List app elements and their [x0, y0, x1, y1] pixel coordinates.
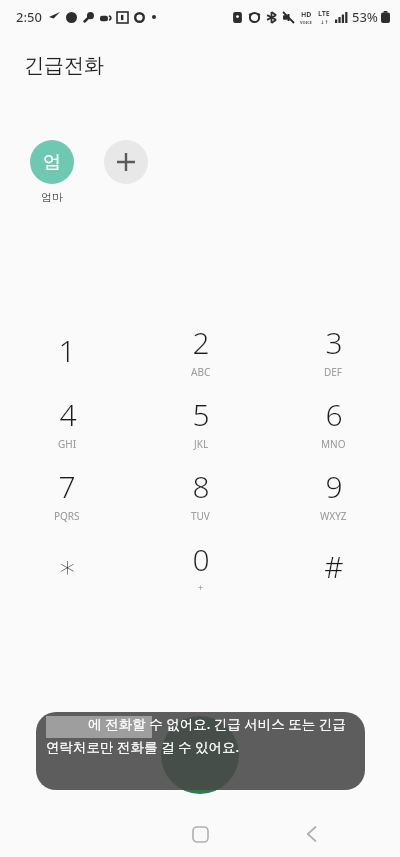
staticText: ABC: [191, 365, 211, 379]
button[interactable]: 0: [134, 530, 267, 602]
staticText: 3: [325, 322, 343, 363]
staticText: WXYZ: [320, 509, 347, 523]
staticText: MNO: [321, 437, 346, 451]
button[interactable]: 1: [0, 314, 134, 386]
staticText: 1: [58, 330, 76, 371]
button[interactable]: 2: [134, 314, 267, 386]
staticText: 2:50: [16, 8, 42, 26]
button[interactable]: Add contact: [104, 140, 148, 184]
staticText: 0: [192, 539, 210, 580]
staticText: 에 전화할 수 없어요. 긴급 서비스 또는 긴급 연락처로만 전화를 걸 수 …: [46, 715, 353, 756]
button[interactable]: 7: [0, 458, 134, 530]
button[interactable]: 엄: [30, 140, 74, 204]
button[interactable]: #: [267, 530, 400, 602]
staticText: 8: [192, 466, 210, 507]
staticText: 7: [58, 466, 76, 507]
staticText: +: [198, 581, 204, 593]
staticText: 53%: [352, 8, 378, 26]
staticText: 5: [192, 394, 210, 435]
button[interactable]: 6: [267, 386, 400, 458]
staticText: 2: [192, 322, 210, 363]
staticText: ∗: [58, 549, 77, 584]
staticText: 긴급전화: [24, 53, 104, 78]
button[interactable]: ∗: [0, 530, 134, 602]
staticText: TUV: [191, 509, 210, 523]
button[interactable]: 4: [0, 386, 134, 458]
staticText: DEF: [324, 365, 343, 379]
staticText: 엄마: [41, 190, 63, 204]
button[interactable]: 3: [267, 314, 400, 386]
button[interactable]: Call: [161, 716, 239, 794]
staticText: ↓↑: [320, 19, 329, 25]
staticText: VOICE: [300, 20, 313, 25]
button[interactable]: Home: [177, 811, 223, 857]
button[interactable]: Back: [289, 811, 335, 857]
staticText: 6: [325, 394, 343, 435]
button[interactable]: 9: [267, 458, 400, 530]
staticText: LTE: [318, 9, 330, 19]
staticText: 9: [325, 466, 343, 507]
staticText: JKL: [194, 437, 209, 451]
button[interactable]: 5: [134, 386, 267, 458]
button[interactable]: 8: [134, 458, 267, 530]
staticText: HD: [301, 10, 312, 20]
staticText: GHI: [58, 437, 77, 451]
staticText: PQRS: [54, 509, 80, 523]
staticText: 엄: [43, 151, 61, 174]
staticText: #: [324, 546, 344, 587]
staticText: 4: [59, 394, 77, 435]
